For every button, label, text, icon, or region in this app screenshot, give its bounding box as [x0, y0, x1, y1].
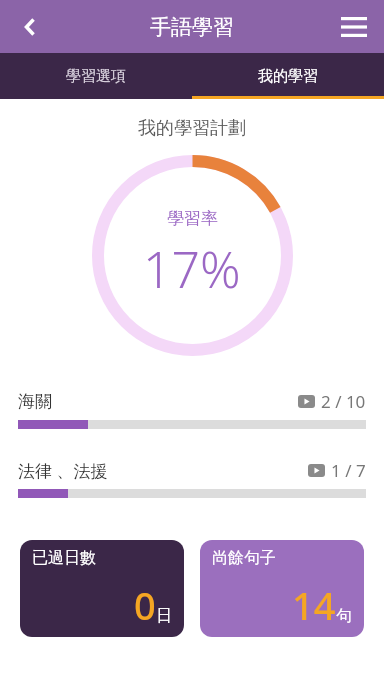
staticText: 日	[156, 606, 172, 626]
staticText: 已過日數	[32, 548, 96, 568]
staticText: 海關	[18, 391, 298, 412]
staticText: 14	[292, 579, 336, 631]
staticText: 手語學習	[150, 14, 234, 40]
button[interactable]: 我的學習	[192, 53, 384, 99]
staticText: 學習選項	[66, 67, 126, 86]
staticText: 句	[336, 606, 352, 626]
button[interactable]: Menu	[330, 3, 378, 51]
button[interactable]: Back	[6, 3, 54, 51]
staticText: 17%	[143, 235, 241, 303]
button[interactable]: 已過日數	[20, 540, 184, 637]
staticText: 尚餘句子	[212, 548, 276, 568]
staticText: 我的學習	[258, 67, 318, 86]
button[interactable]: 學習選項	[0, 53, 192, 99]
staticText: 1 / 7	[331, 459, 366, 482]
staticText: 學習率	[167, 208, 218, 229]
button[interactable]: 法律 、法援	[0, 459, 384, 498]
staticText: 我的學習計劃	[0, 117, 384, 140]
button[interactable]: 海關	[0, 390, 384, 429]
button[interactable]: 尚餘句子	[200, 540, 364, 637]
staticText: 0	[134, 579, 156, 631]
staticText: 2 / 10	[321, 390, 366, 413]
staticText: 法律 、法援	[18, 459, 308, 482]
